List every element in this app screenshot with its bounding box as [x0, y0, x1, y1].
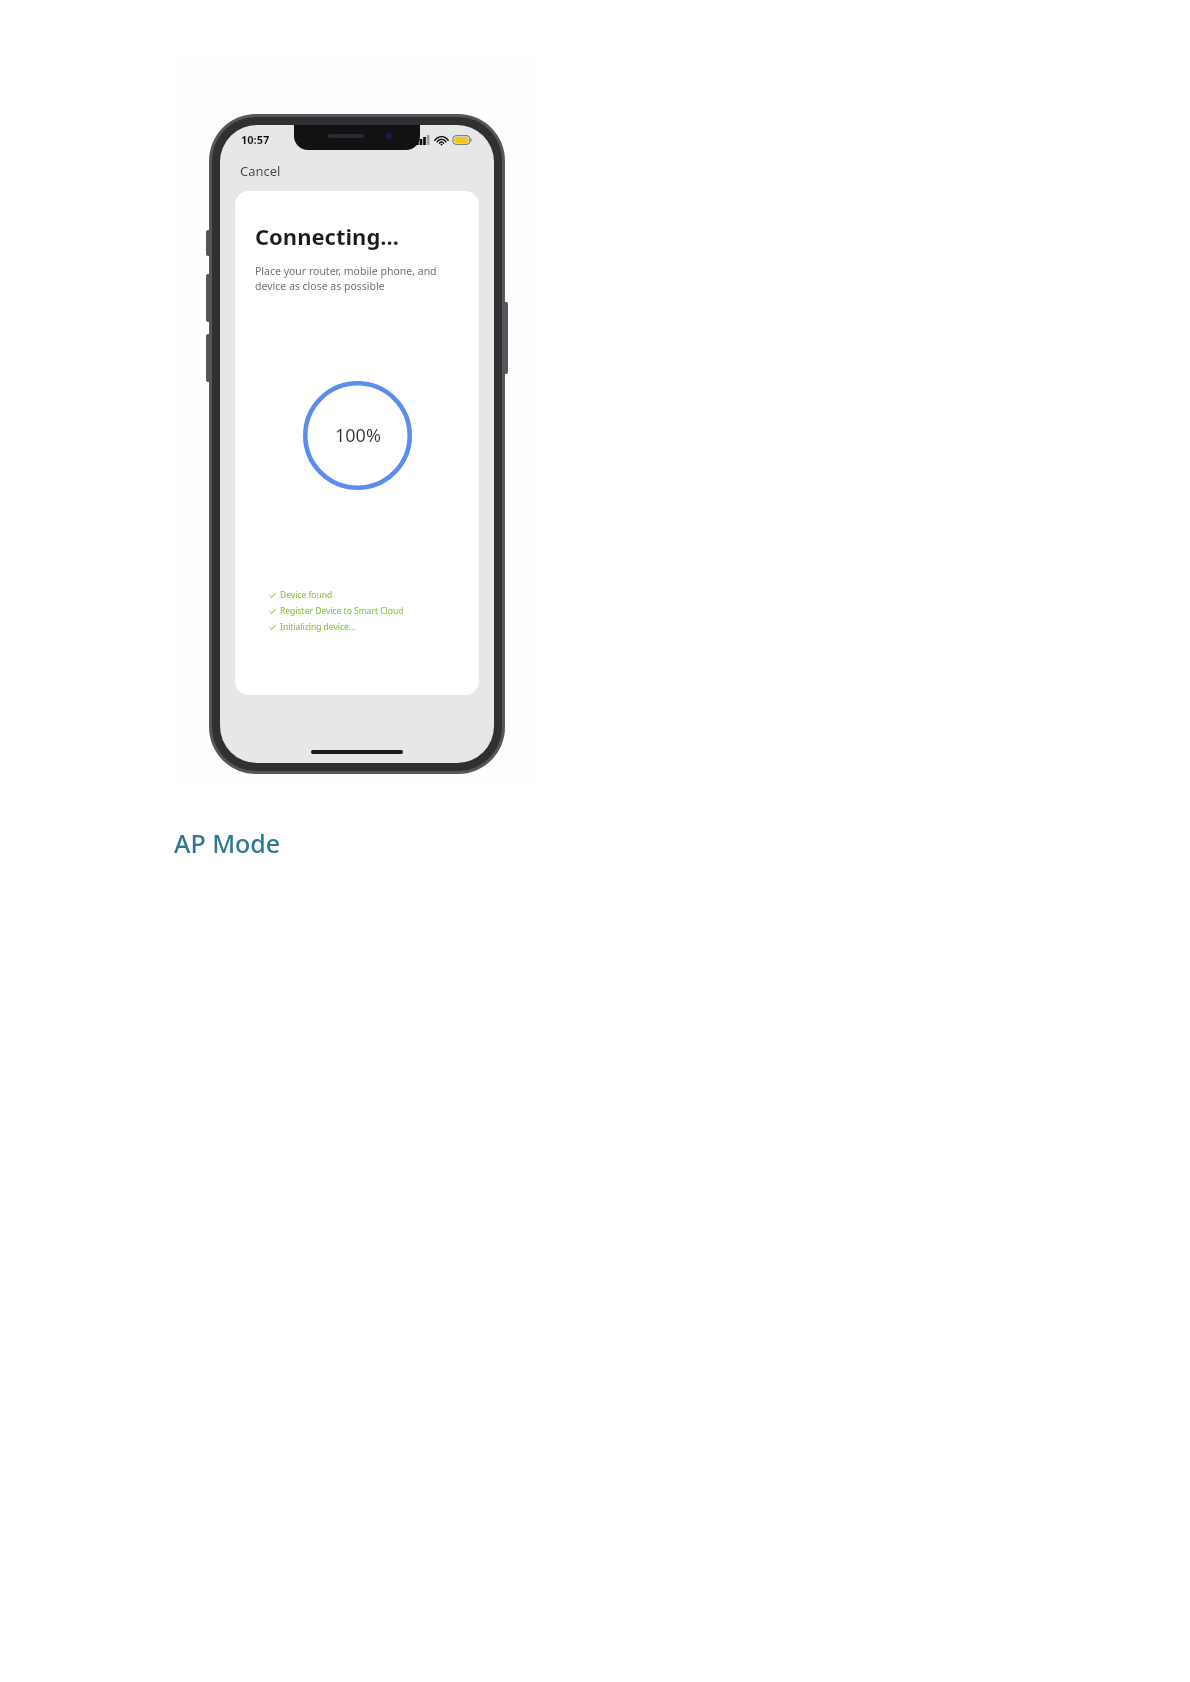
staticText: Initializing device...: [280, 621, 356, 633]
staticText: Cancel: [240, 162, 281, 180]
other: Completed: [269, 624, 276, 631]
staticText: AP Mode: [174, 826, 281, 860]
button[interactable]: AP Mode: [174, 826, 281, 860]
staticText: Place your router, mobile phone, and dev…: [255, 264, 437, 293]
other: Completed: [269, 608, 276, 615]
other: Completed: [269, 592, 276, 599]
staticText: Register Device to Smart Cloud: [280, 605, 404, 617]
staticText: Connecting...: [255, 221, 399, 251]
staticText: 10:57: [241, 132, 270, 147]
button[interactable]: Cancel: [236, 158, 285, 184]
staticText: 100%: [335, 423, 381, 448]
staticText: Device found: [280, 589, 333, 601]
